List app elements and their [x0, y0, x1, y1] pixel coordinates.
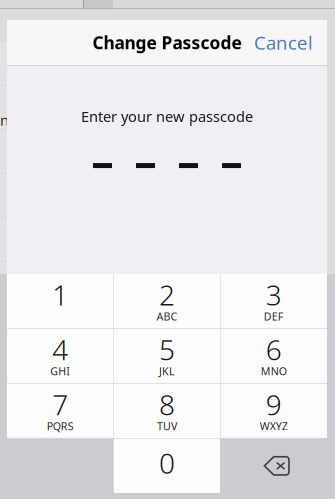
- staticText: 3: [266, 276, 282, 313]
- staticText: WXYZ: [260, 419, 288, 433]
- staticText: 0: [159, 444, 175, 481]
- button[interactable]: 1: [7, 274, 114, 328]
- staticText: PQRS: [47, 419, 74, 433]
- button[interactable]: 2: [114, 274, 220, 328]
- button[interactable]: 8: [114, 384, 220, 438]
- staticText: JKL: [159, 364, 175, 378]
- staticText: 5: [159, 331, 175, 368]
- button[interactable]: 7: [7, 384, 114, 438]
- staticText: 9: [266, 386, 282, 423]
- button[interactable]: 0: [114, 439, 220, 493]
- button[interactable]: Cancel: [245, 20, 327, 65]
- staticText: 1: [52, 276, 68, 313]
- button[interactable]: 9: [220, 384, 327, 438]
- staticText: ABC: [156, 309, 177, 323]
- button[interactable]: 6: [220, 329, 327, 383]
- staticText: 7: [52, 386, 68, 423]
- button[interactable]: 5: [114, 329, 220, 383]
- staticText: TUV: [157, 419, 177, 433]
- button[interactable]: 3: [220, 274, 327, 328]
- staticText: Enter your new passcode: [81, 107, 253, 126]
- staticText: GHI: [50, 364, 70, 378]
- staticText: DEF: [264, 309, 284, 323]
- staticText: 6: [266, 331, 282, 368]
- button[interactable]: 4: [7, 329, 114, 383]
- staticText: Change Passcode: [92, 31, 241, 54]
- staticText: Cancel: [254, 30, 313, 55]
- staticText: 4: [52, 331, 68, 368]
- staticText: 2: [159, 276, 175, 313]
- staticText: 8: [159, 386, 175, 423]
- staticText: MNO: [261, 364, 287, 378]
- staticText: n: [0, 110, 9, 130]
- button[interactable]: Delete: [220, 439, 327, 493]
